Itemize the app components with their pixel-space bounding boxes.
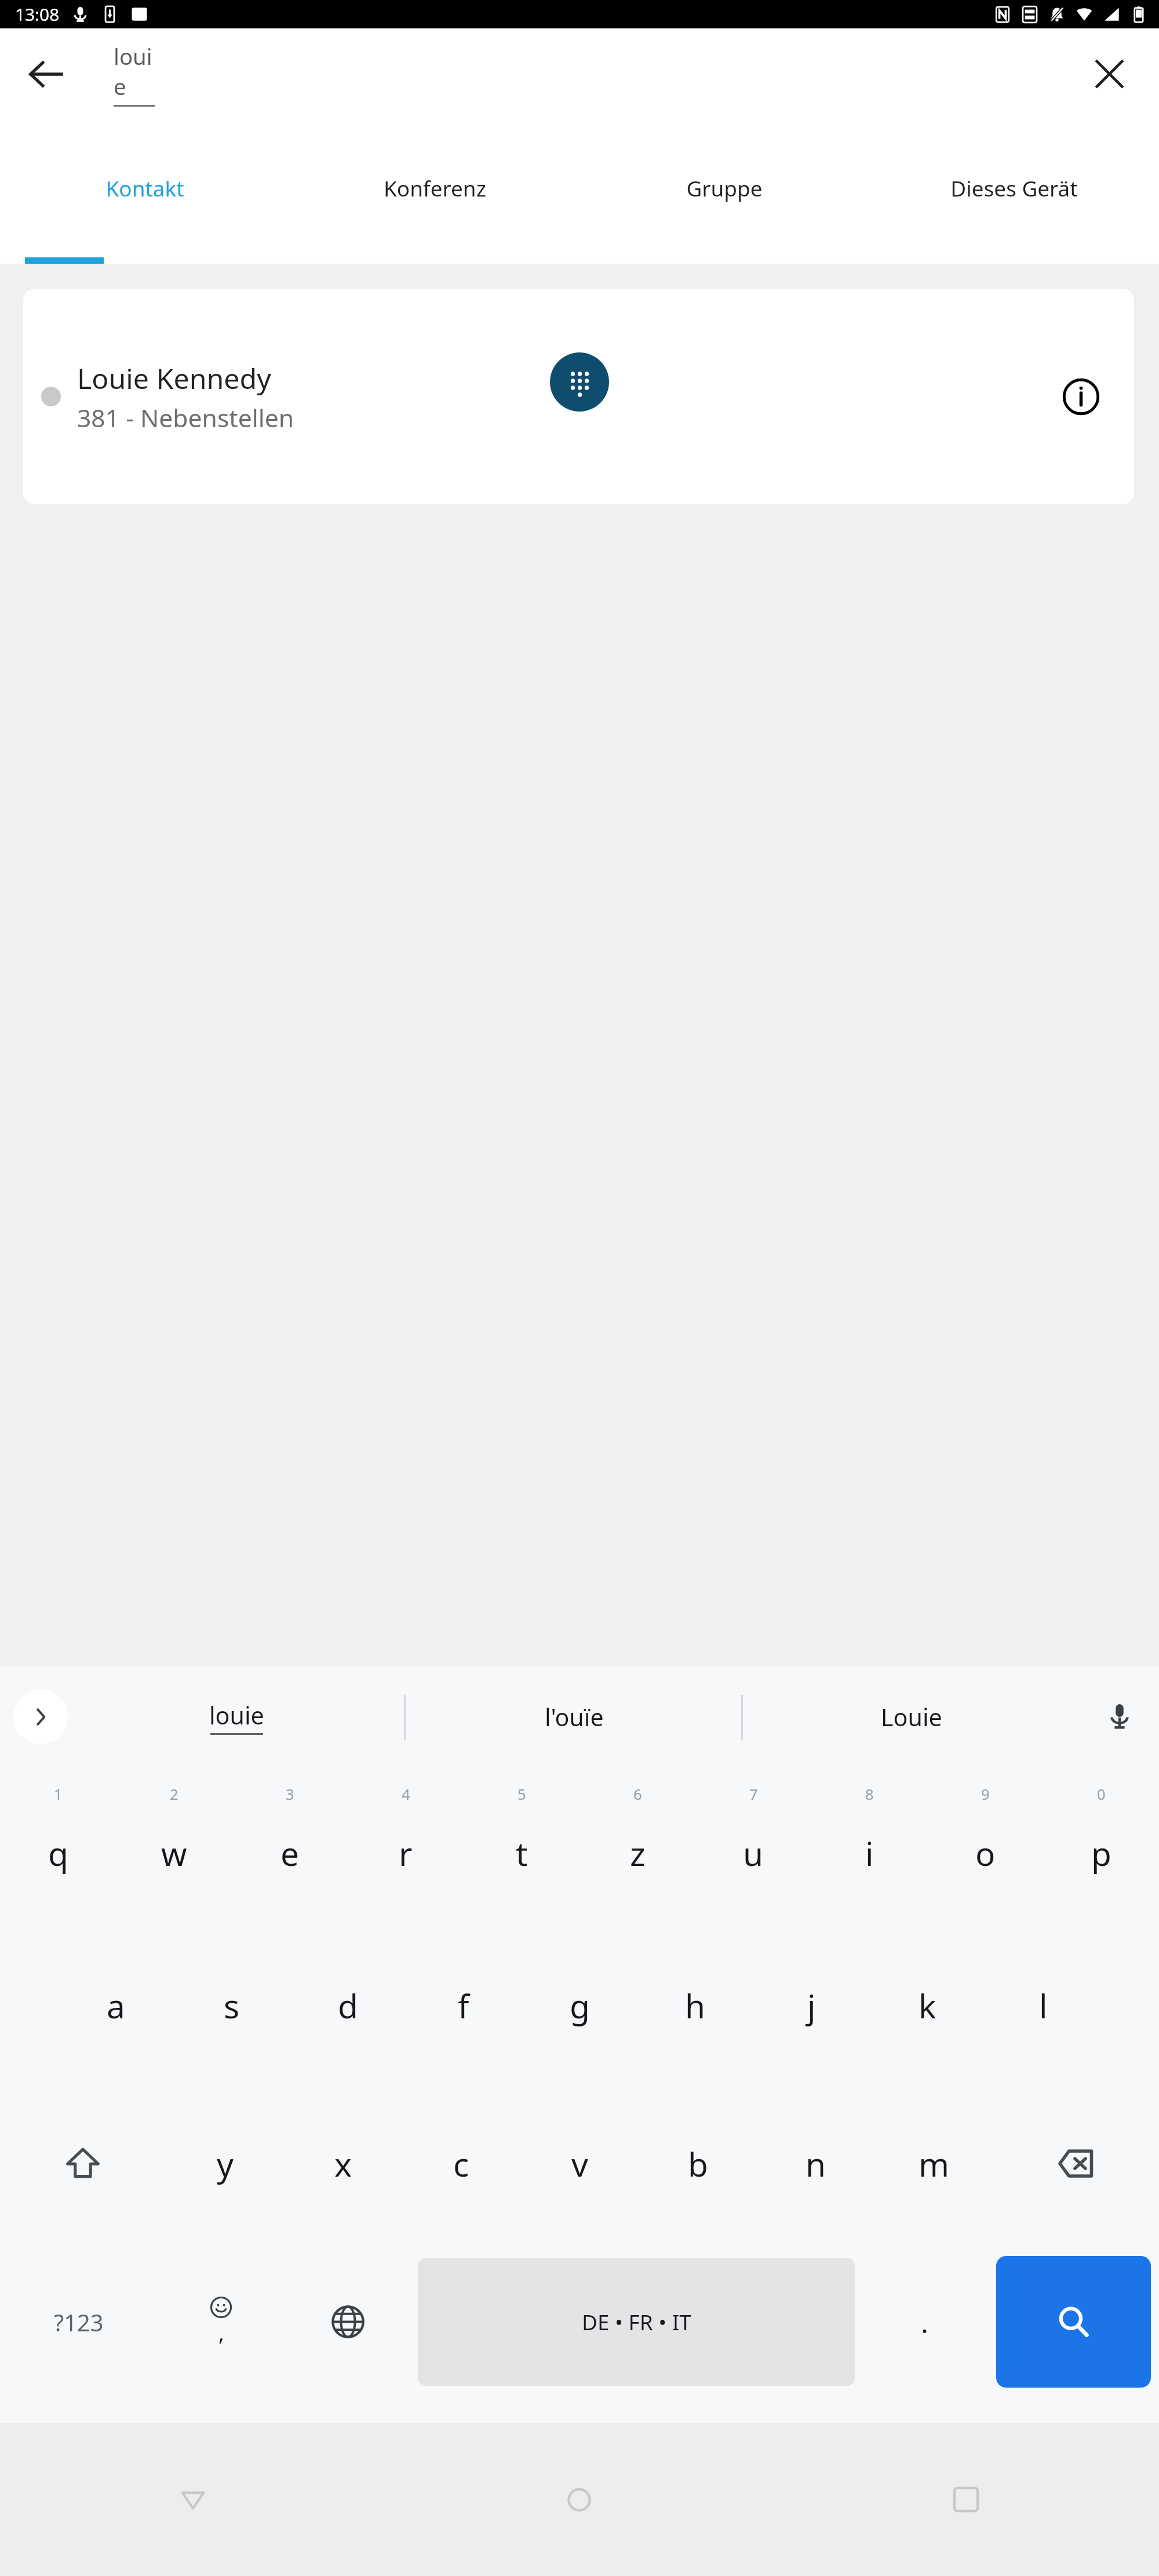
button[interactable]: 0 xyxy=(1043,1768,1159,1926)
button[interactable]: f xyxy=(406,1926,522,2084)
staticText: t xyxy=(516,1831,528,1875)
staticText: n xyxy=(806,2141,826,2186)
staticText: s xyxy=(224,1983,240,2028)
button[interactable]: Kontakt xyxy=(0,119,290,257)
staticText: l'ouïe xyxy=(545,1701,604,1733)
button[interactable]: Change language xyxy=(285,2243,411,2401)
button[interactable]: Gruppe xyxy=(579,119,869,257)
button[interactable]: h xyxy=(637,1926,753,2084)
button[interactable]: Voice input xyxy=(1080,1666,1159,1768)
staticText: 3 xyxy=(286,1784,294,1804)
staticText: 9 xyxy=(981,1784,990,1804)
staticText: louie xyxy=(209,1699,264,1731)
button[interactable]: y xyxy=(166,2084,284,2243)
button[interactable]: Dieses Gerät xyxy=(869,119,1159,257)
staticText: w xyxy=(161,1831,187,1875)
button[interactable]: Emoji xyxy=(158,2243,285,2401)
button[interactable]: louie xyxy=(68,1666,406,1768)
button[interactable]: a xyxy=(58,1926,174,2084)
button[interactable]: Details xyxy=(1043,359,1119,435)
button[interactable]: l xyxy=(985,1926,1101,2084)
staticText: 2 xyxy=(170,1784,178,1804)
staticText: Gruppe xyxy=(686,174,763,203)
staticText: f xyxy=(458,1983,469,2028)
button[interactable]: Search xyxy=(996,2256,1151,2388)
staticText: Louie xyxy=(881,1701,942,1733)
button[interactable]: Clear xyxy=(1073,38,1146,110)
staticText: l xyxy=(1039,1983,1048,2028)
staticText: k xyxy=(919,1983,936,2028)
button[interactable]: s xyxy=(174,1926,290,2084)
button[interactable]: Louie Kennedy xyxy=(23,289,1134,504)
button[interactable]: 7 xyxy=(695,1768,811,1926)
staticText: g xyxy=(570,1983,590,2028)
button[interactable]: g xyxy=(522,1926,637,2084)
staticText: ?123 xyxy=(54,2306,104,2338)
button[interactable]: Backspace xyxy=(993,2084,1159,2243)
button[interactable]: Louie xyxy=(743,1666,1080,1768)
staticText: Louie Kennedy xyxy=(77,359,271,397)
staticText: 4 xyxy=(402,1784,410,1804)
button[interactable]: 8 xyxy=(811,1768,927,1926)
staticText: r xyxy=(399,1831,413,1875)
staticText: DE • FR • IT xyxy=(582,2308,691,2337)
button[interactable]: Dialpad xyxy=(550,352,609,412)
staticText: 6 xyxy=(633,1784,642,1804)
staticText: y xyxy=(217,2141,234,2186)
button[interactable]: 9 xyxy=(927,1768,1043,1926)
button[interactable]: DE • FR • IT xyxy=(418,2258,855,2386)
button[interactable]: m xyxy=(875,2084,993,2243)
button[interactable]: louie xyxy=(114,41,155,107)
staticText: . xyxy=(921,2303,928,2341)
staticText: 13:08 xyxy=(15,2,60,26)
button[interactable]: 5 xyxy=(464,1768,579,1926)
button[interactable]: v xyxy=(520,2084,639,2243)
staticText: d xyxy=(338,1983,358,2028)
button[interactable]: Back xyxy=(10,38,82,110)
button[interactable]: 1 xyxy=(0,1768,116,1926)
button[interactable]: c xyxy=(402,2084,520,2243)
staticText: Dieses Gerät xyxy=(950,174,1078,203)
button[interactable]: x xyxy=(284,2084,402,2243)
staticText: 1 xyxy=(54,1784,63,1804)
staticText: c xyxy=(453,2141,469,2186)
staticText: x xyxy=(334,2141,352,2186)
staticText: q xyxy=(48,1831,68,1875)
staticText: v xyxy=(571,2141,588,2186)
button[interactable]: 2 xyxy=(116,1768,232,1926)
button[interactable]: 6 xyxy=(579,1768,695,1926)
button[interactable]: b xyxy=(639,2084,757,2243)
staticText: m xyxy=(919,2141,950,2186)
staticText: a xyxy=(107,1983,125,2028)
button[interactable]: More suggestions xyxy=(13,1690,68,1744)
button[interactable]: 3 xyxy=(232,1768,348,1926)
button[interactable]: j xyxy=(753,1926,869,2084)
button[interactable]: n xyxy=(757,2084,875,2243)
staticText: louie xyxy=(114,41,155,101)
button[interactable]: 4 xyxy=(348,1768,464,1926)
button[interactable]: d xyxy=(290,1926,406,2084)
button[interactable]: Shift xyxy=(0,2084,166,2243)
button[interactable]: Konferenz xyxy=(290,119,579,257)
staticText: 381 - Nebenstellen xyxy=(77,401,294,434)
button[interactable]: ?123 xyxy=(0,2243,158,2401)
staticText: 8 xyxy=(865,1784,874,1804)
staticText: i xyxy=(865,1831,874,1875)
staticText: Konferenz xyxy=(384,174,486,203)
button[interactable]: . xyxy=(861,2243,988,2401)
staticText: o xyxy=(975,1831,996,1875)
staticText: p xyxy=(1091,1831,1111,1875)
staticText: h xyxy=(685,1983,706,2028)
staticText: b xyxy=(688,2141,708,2186)
staticText: , xyxy=(218,2318,224,2347)
staticText: u xyxy=(743,1831,764,1875)
staticText: e xyxy=(280,1831,300,1875)
staticText: 7 xyxy=(749,1784,758,1804)
staticText: z xyxy=(630,1831,646,1875)
button[interactable]: k xyxy=(869,1926,985,2084)
staticText: 0 xyxy=(1097,1784,1106,1804)
button[interactable]: l'ouïe xyxy=(406,1666,743,1768)
